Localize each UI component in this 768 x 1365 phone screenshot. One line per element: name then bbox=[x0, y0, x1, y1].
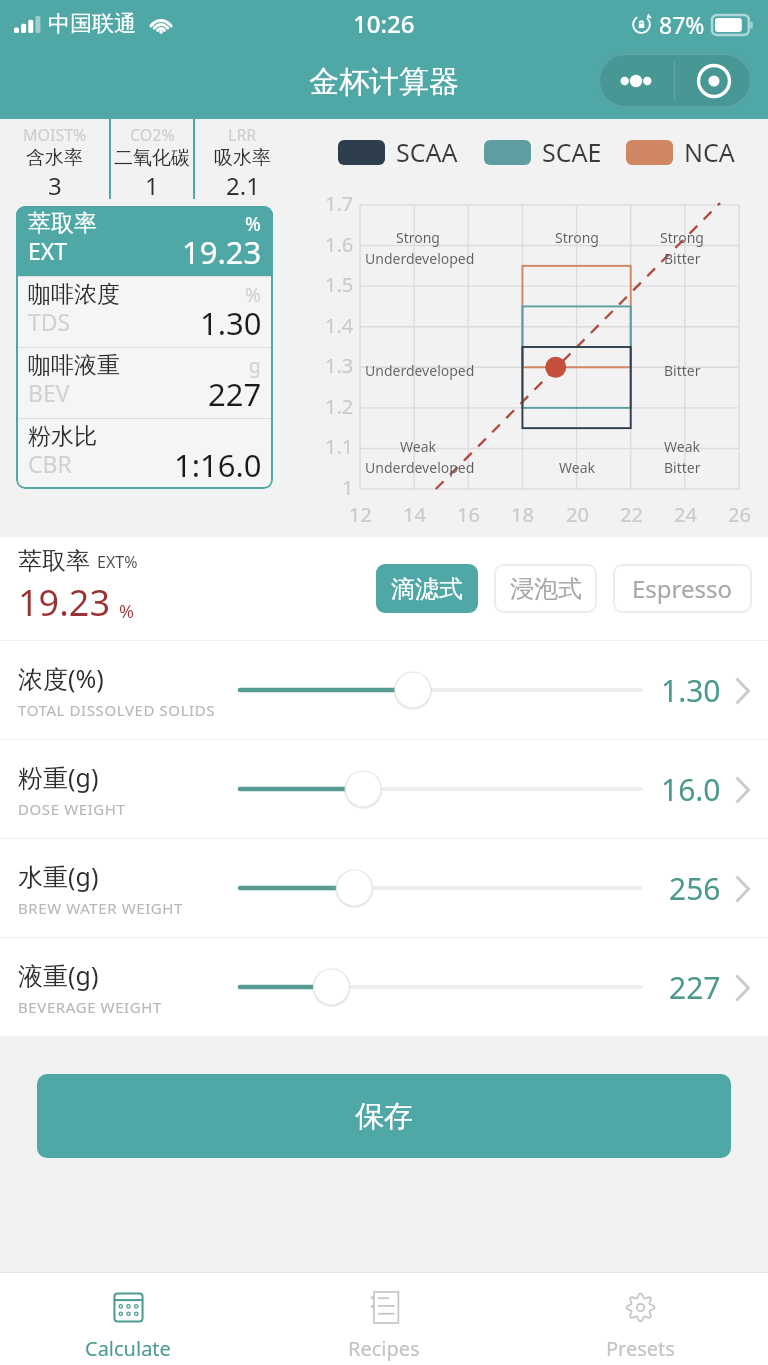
staticText: 吸水率 bbox=[214, 146, 271, 170]
staticText: BEV bbox=[28, 377, 70, 408]
button[interactable]: 浓度(%) bbox=[0, 641, 768, 739]
staticText: DOSE WEIGHT bbox=[18, 799, 126, 819]
staticText: 萃取率 bbox=[28, 209, 97, 238]
staticText: LRR bbox=[228, 124, 257, 146]
staticText: Bitter bbox=[664, 458, 701, 477]
staticText: Strong bbox=[396, 228, 440, 247]
button[interactable]: 滴滤式 bbox=[376, 564, 478, 613]
staticText: TDS bbox=[28, 306, 71, 337]
staticText: 227 bbox=[208, 373, 262, 415]
staticText: Underdeveloped bbox=[365, 458, 475, 477]
staticText: 227 bbox=[669, 967, 721, 1008]
staticText: Strong bbox=[660, 228, 704, 247]
staticText: 26 bbox=[728, 501, 751, 528]
staticText: EXT% bbox=[97, 551, 138, 573]
button[interactable]: 液重(g) bbox=[0, 938, 768, 1036]
staticText: 16 bbox=[457, 501, 480, 528]
staticText: 1 bbox=[145, 169, 159, 198]
button[interactable]: 咖啡液重 bbox=[16, 348, 273, 418]
staticText: 浸泡式 bbox=[510, 574, 582, 604]
staticText: 中国联通 bbox=[48, 10, 136, 38]
staticText: 1:16.0 bbox=[174, 444, 262, 486]
staticText: 87% bbox=[659, 9, 705, 40]
button[interactable]: 粉水比 bbox=[16, 419, 273, 489]
button[interactable]: Close mini program bbox=[675, 53, 752, 108]
staticText: 1.30 bbox=[200, 302, 262, 344]
button[interactable]: Calculate bbox=[0, 1273, 256, 1365]
staticText: 256 bbox=[669, 868, 721, 909]
staticText: 1.6 bbox=[325, 231, 354, 258]
staticText: 10:26 bbox=[353, 7, 415, 40]
staticText: 二氧化碳 bbox=[114, 146, 190, 170]
button[interactable]: More options bbox=[598, 53, 674, 108]
staticText: Bitter bbox=[664, 249, 701, 268]
staticText: TOTAL DISSOLVED SOLIDS bbox=[18, 700, 216, 720]
staticText: 1.5 bbox=[325, 271, 354, 298]
staticText: CBR bbox=[28, 448, 72, 479]
staticText: Recipes bbox=[348, 1335, 420, 1362]
staticText: % bbox=[245, 211, 261, 237]
staticText: 水重(g) bbox=[18, 859, 99, 893]
staticText: 2.1 bbox=[226, 169, 260, 198]
button[interactable]: 浸泡式 bbox=[494, 564, 597, 613]
staticText: BREW WATER WEIGHT bbox=[18, 898, 184, 918]
staticText: 20 bbox=[566, 501, 589, 528]
staticText: Calculate bbox=[85, 1335, 171, 1362]
staticText: 含水率 bbox=[26, 146, 83, 170]
staticText: g bbox=[249, 353, 261, 379]
staticText: 1.2 bbox=[325, 393, 354, 420]
staticText: 1.3 bbox=[325, 352, 354, 379]
staticText: Weak bbox=[664, 437, 700, 456]
button[interactable]: Recipes bbox=[256, 1273, 512, 1365]
staticText: EXT bbox=[28, 235, 68, 266]
staticText: 3 bbox=[48, 169, 62, 198]
staticText: Espresso bbox=[632, 572, 733, 605]
button[interactable]: 水重(g) bbox=[0, 839, 768, 937]
staticText: Underdeveloped bbox=[365, 249, 475, 268]
button[interactable]: Presets bbox=[512, 1273, 768, 1365]
button[interactable]: 萃取率 bbox=[16, 206, 273, 276]
staticText: Weak bbox=[559, 458, 595, 477]
staticText: BEVERAGE WEIGHT bbox=[18, 997, 162, 1017]
staticText: % bbox=[245, 282, 261, 308]
button[interactable]: 保存 bbox=[37, 1074, 731, 1158]
staticText: SCAE bbox=[542, 135, 602, 169]
staticText: 19.23 bbox=[182, 231, 262, 273]
staticText: Strong bbox=[555, 228, 599, 247]
staticText: 12 bbox=[349, 501, 372, 528]
staticText: SCAA bbox=[396, 135, 458, 169]
staticText: Weak bbox=[400, 437, 436, 456]
staticText: 1.1 bbox=[325, 433, 354, 460]
staticText: 24 bbox=[674, 501, 697, 528]
staticText: 金杯计算器 bbox=[309, 63, 459, 101]
staticText: % bbox=[119, 599, 134, 624]
staticText: MOIST% bbox=[23, 124, 87, 146]
staticText: 22 bbox=[620, 501, 643, 528]
staticText: 14 bbox=[403, 501, 426, 528]
staticText: Underdeveloped bbox=[365, 361, 475, 380]
staticText: 粉水比 bbox=[28, 422, 97, 451]
staticText: 咖啡浓度 bbox=[28, 280, 120, 309]
staticText: 18 bbox=[511, 501, 534, 528]
staticText: 液重(g) bbox=[18, 958, 99, 992]
staticText: Bitter bbox=[664, 361, 701, 380]
staticText: 浓度(%) bbox=[18, 661, 104, 695]
staticText: 1.30 bbox=[661, 670, 721, 711]
staticText: 粉重(g) bbox=[18, 760, 99, 794]
button[interactable]: Espresso bbox=[613, 564, 752, 613]
staticText: Presets bbox=[606, 1335, 675, 1362]
staticText: NCA bbox=[684, 135, 735, 169]
staticText: 咖啡液重 bbox=[28, 351, 120, 380]
button[interactable]: 粉重(g) bbox=[0, 740, 768, 838]
staticText: 保存 bbox=[355, 1098, 413, 1135]
button[interactable]: 咖啡浓度 bbox=[16, 277, 273, 347]
staticText: 1 bbox=[342, 474, 354, 501]
staticText: 16.0 bbox=[661, 769, 721, 810]
staticText: 1.4 bbox=[325, 312, 354, 339]
staticText: 1.7 bbox=[325, 190, 354, 217]
staticText: 19.23 bbox=[18, 578, 111, 627]
staticText: 萃取率 bbox=[18, 546, 90, 576]
staticText: CO2% bbox=[130, 124, 175, 146]
staticText: 滴滤式 bbox=[391, 574, 463, 604]
